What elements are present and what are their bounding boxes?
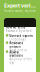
staticText: Licensed experts: [9, 34, 32, 38]
button[interactable]: Licensed experts: [4, 35, 36, 44]
staticText: Reviewed answers: [9, 41, 23, 48]
staticText: How we verify: [6, 26, 25, 29]
staticText: Always available: [9, 50, 23, 57]
staticText: Trusted advice, any time: [4, 9, 36, 13]
staticText: Credentials checked: [9, 38, 25, 45]
staticText: Read end to end: [9, 48, 27, 56]
staticText: Any hour of the day: [9, 57, 32, 65]
button[interactable]: Reviewed answers: [4, 44, 36, 53]
staticText: Reviewed by vetted pros: [6, 29, 32, 36]
staticText: Expert verified: [4, 2, 36, 9]
button[interactable]: Always available: [4, 53, 36, 62]
